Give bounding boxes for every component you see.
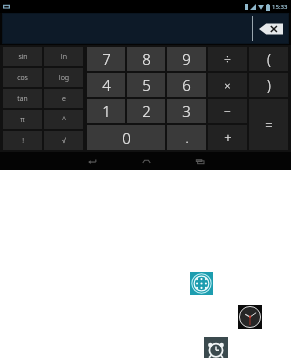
button[interactable]: sin	[3, 47, 42, 66]
button[interactable]: −	[208, 99, 247, 123]
staticText: √	[62, 137, 66, 145]
staticText: ^	[62, 115, 66, 125]
staticText: cos	[17, 73, 28, 83]
staticText: ÷	[224, 51, 231, 67]
button[interactable]: 0	[87, 125, 165, 150]
button[interactable]: 9	[167, 47, 206, 71]
button[interactable]: 4	[87, 73, 125, 97]
button[interactable]: π	[3, 110, 42, 129]
button[interactable]: √	[44, 131, 83, 150]
staticText: log	[59, 73, 69, 83]
button[interactable]: 3	[167, 99, 206, 123]
staticText: +	[224, 129, 232, 147]
button[interactable]: log	[44, 68, 83, 87]
button[interactable]: ×	[208, 73, 247, 97]
staticText: ln	[61, 52, 67, 62]
staticText: e	[62, 94, 66, 104]
button[interactable]: !	[3, 131, 42, 150]
button[interactable]: Apps	[190, 272, 213, 295]
button[interactable]: 1	[87, 99, 125, 123]
staticText: ×	[224, 78, 231, 93]
staticText: sin	[18, 52, 28, 62]
button[interactable]: tan	[3, 89, 42, 108]
button[interactable]: Clock	[238, 305, 262, 329]
staticText: (	[267, 50, 271, 69]
button[interactable]: Back	[83, 152, 101, 170]
button[interactable]: =	[249, 99, 288, 150]
button[interactable]: ^	[44, 110, 83, 129]
button[interactable]: .	[167, 125, 206, 150]
button[interactable]: Delete	[2, 13, 289, 44]
button[interactable]: 8	[127, 47, 165, 71]
staticText: 15:33	[272, 3, 288, 11]
staticText: 3	[182, 101, 191, 121]
staticText: 8	[142, 49, 151, 69]
button[interactable]: Home	[137, 152, 155, 170]
staticText: !	[22, 136, 24, 146]
staticText: 1	[102, 101, 111, 121]
staticText: −	[224, 103, 231, 119]
staticText: 6	[182, 75, 191, 95]
button[interactable]: e	[44, 89, 83, 108]
staticText: 2	[142, 101, 151, 121]
button[interactable]: 5	[127, 73, 165, 97]
staticText: .	[185, 129, 189, 147]
staticText: 7	[102, 49, 111, 69]
staticText: 5	[142, 75, 151, 95]
button[interactable]: 2	[127, 99, 165, 123]
button[interactable]: 6	[167, 73, 206, 97]
staticText: =	[265, 116, 273, 134]
button[interactable]: Delete	[259, 22, 283, 36]
button[interactable]: ÷	[208, 47, 247, 71]
staticText: 4	[102, 75, 111, 95]
button[interactable]: )	[249, 73, 288, 97]
staticText: 9	[182, 49, 191, 69]
button[interactable]: 7	[87, 47, 125, 71]
button[interactable]: +	[208, 125, 247, 150]
staticText: tan	[17, 94, 28, 104]
button[interactable]: Recent apps	[191, 152, 209, 170]
button[interactable]: cos	[3, 68, 42, 87]
staticText: )	[267, 76, 271, 95]
button[interactable]: ln	[44, 47, 83, 66]
staticText: π	[20, 115, 25, 125]
button[interactable]: Alarm	[204, 337, 228, 358]
button[interactable]: (	[249, 47, 288, 71]
staticText: 0	[122, 128, 131, 148]
